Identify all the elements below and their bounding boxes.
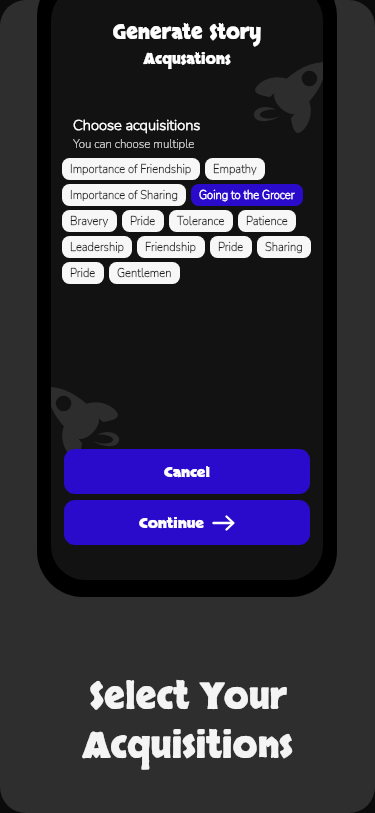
staticText: Gentlemen xyxy=(117,266,172,281)
staticText: Patience xyxy=(246,214,288,229)
staticText: Continue xyxy=(139,513,204,533)
button[interactable]: Bravery xyxy=(62,210,117,232)
staticText: Going to the Grocer xyxy=(199,188,295,203)
staticText: Tolerance xyxy=(177,214,225,229)
staticText: Pride xyxy=(218,240,244,255)
button[interactable]: Importance of Sharing xyxy=(62,184,186,206)
staticText: Importance of Friendship xyxy=(70,162,192,177)
button[interactable]: Continue xyxy=(64,500,310,545)
staticText: Leadership xyxy=(70,240,124,255)
button[interactable]: Sharing xyxy=(257,236,311,258)
button[interactable]: Leadership xyxy=(62,236,132,258)
staticText: Sharing xyxy=(265,240,303,255)
button[interactable]: Tolerance xyxy=(169,210,233,232)
button[interactable]: Empathy xyxy=(205,158,265,180)
button[interactable]: Going to the Grocer xyxy=(191,184,303,206)
staticText: Acqusations xyxy=(63,49,311,69)
button[interactable]: Pride xyxy=(62,262,104,284)
staticText: Bravery xyxy=(70,214,109,229)
button[interactable]: Pride xyxy=(122,210,164,232)
staticText: Acquisitions xyxy=(82,722,293,771)
staticText: Pride xyxy=(130,214,156,229)
button[interactable]: Friendship xyxy=(137,236,205,258)
button[interactable]: Gentlemen xyxy=(109,262,180,284)
staticText: Empathy xyxy=(213,162,257,177)
button[interactable]: Importance of Friendship xyxy=(62,158,200,180)
staticText: Friendship xyxy=(145,240,197,255)
button[interactable]: Cancel xyxy=(64,449,310,494)
staticText: Cancel xyxy=(164,462,210,482)
staticText: Importance of Sharing xyxy=(70,188,178,203)
staticText: Pride xyxy=(70,266,96,281)
staticText: You can choose multiple xyxy=(73,136,195,152)
staticText: Select Your xyxy=(89,673,287,722)
button[interactable]: Pride xyxy=(210,236,252,258)
staticText: Generate Story xyxy=(63,19,311,46)
staticText: Choose acquisitions xyxy=(73,115,201,135)
button[interactable]: Patience xyxy=(238,210,296,232)
